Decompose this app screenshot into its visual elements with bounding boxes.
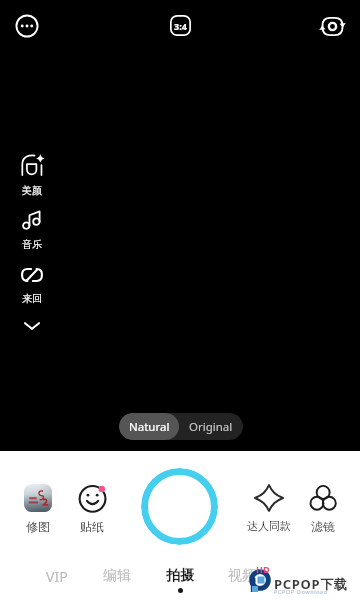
button[interactable]: 拍摄 [154,559,206,597]
staticText: 贴纸 [62,519,122,534]
staticText: 滤镜 [293,519,353,534]
staticText: 来回 [17,292,47,305]
staticText: 达人同款 [239,519,299,533]
staticText: PCPOP下载 [274,575,348,593]
button[interactable]: 美颜 [15,150,49,194]
button[interactable]: Natural [119,413,179,440]
button[interactable]: 贴纸 [62,478,122,538]
button[interactable]: Collapse tools [18,314,46,338]
button[interactable]: Capture [141,468,218,545]
button[interactable]: 滤镜 [293,478,353,538]
staticText: 视频 [228,567,256,585]
staticText: 编辑 [103,567,131,585]
button[interactable]: More options [11,10,43,42]
staticText: 3:4 [174,20,187,32]
button[interactable]: 达人同款 [239,478,299,538]
staticText: VIP [46,567,68,586]
button[interactable]: 3:4 [164,9,196,41]
button[interactable]: 来回 [15,260,49,304]
staticText: PCPOP Download [274,588,328,595]
staticText: 美颜 [17,184,47,197]
staticText: Natural [129,419,170,435]
button[interactable]: 音乐 [15,204,49,248]
button[interactable]: Switch camera [316,10,348,42]
button[interactable]: 修图 [8,478,68,538]
staticText: HD [256,563,270,575]
button[interactable]: 编辑 [91,559,143,597]
staticText: Original [189,419,233,435]
staticText: 音乐 [17,238,47,251]
staticText: 修图 [8,519,68,534]
button[interactable]: Original [179,413,243,440]
staticText: 拍摄 [166,567,194,585]
button[interactable]: VIP [31,559,83,597]
button[interactable]: 视频 [216,559,268,597]
